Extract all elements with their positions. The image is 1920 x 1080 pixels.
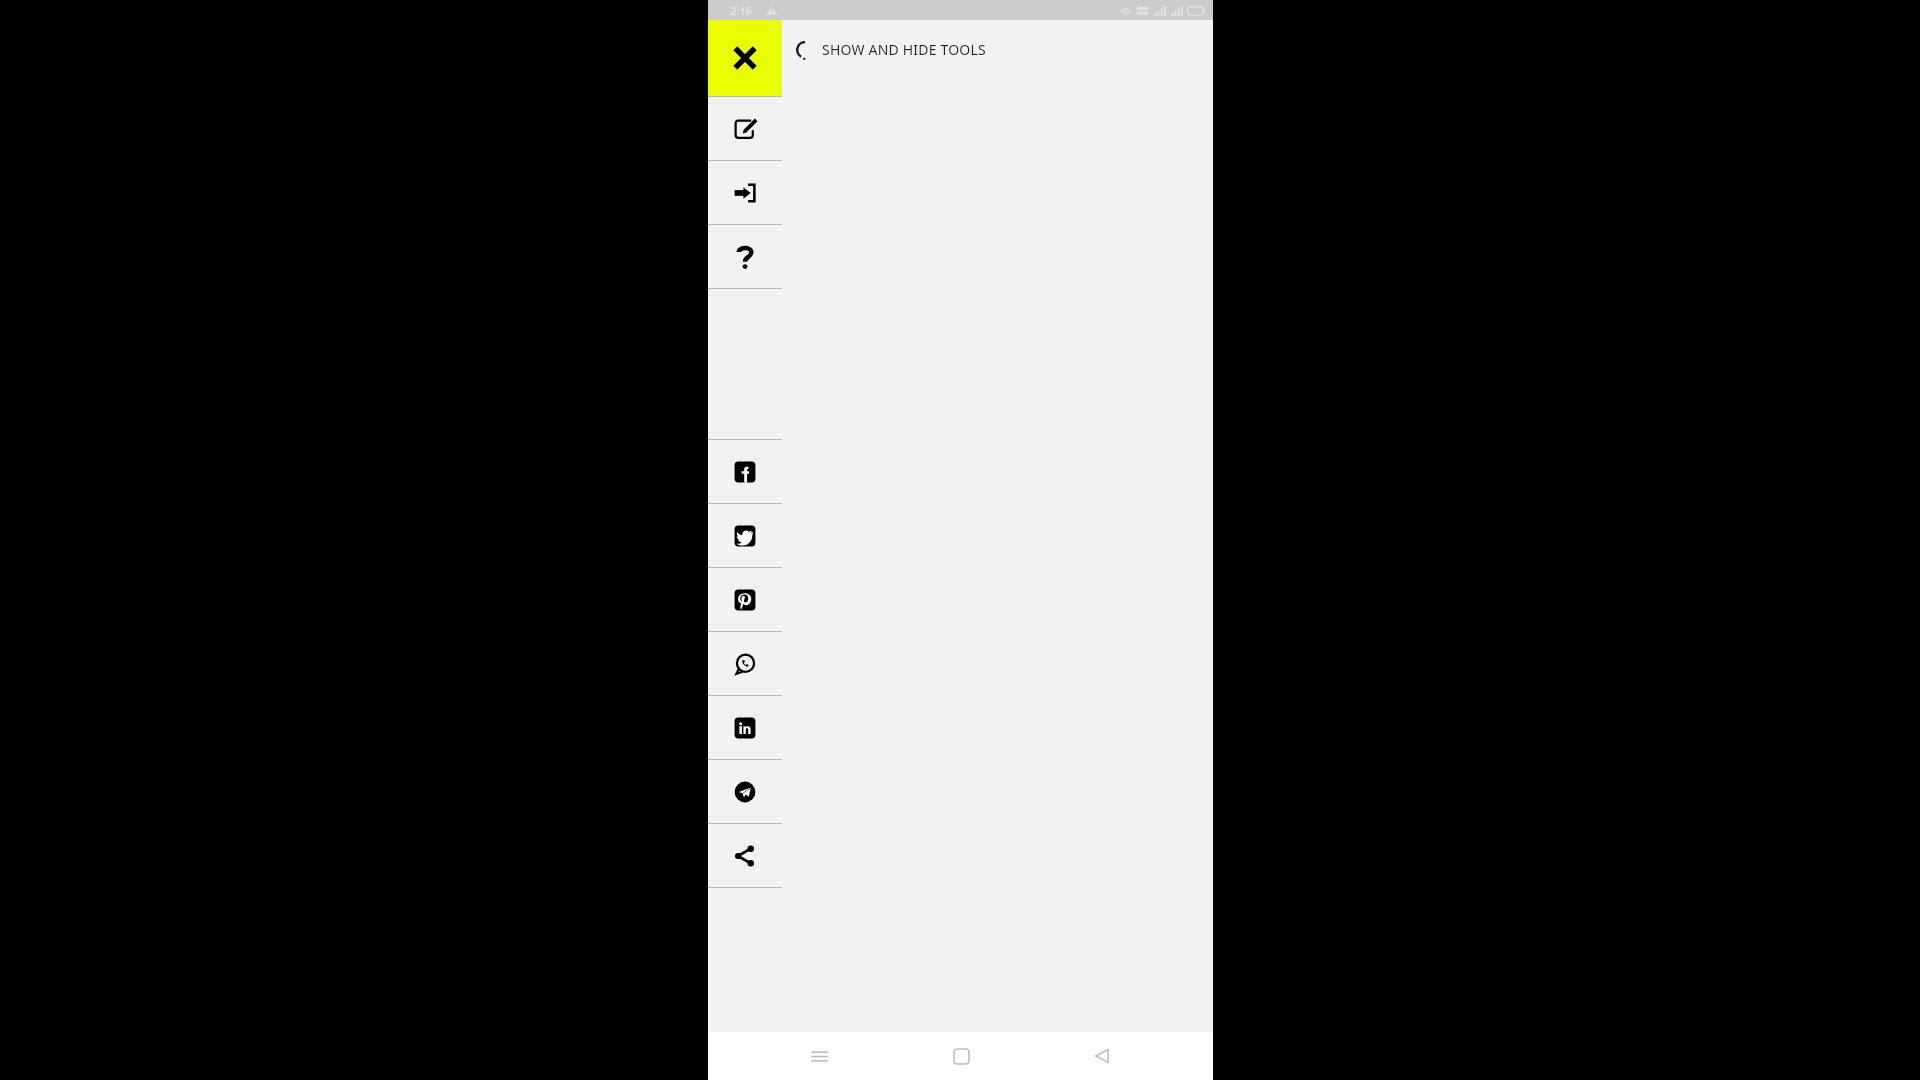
button[interactable]: Back — [1072, 1032, 1132, 1080]
button[interactable]: Facebook — [708, 440, 782, 503]
button[interactable]: LinkedIn — [708, 696, 782, 759]
button[interactable]: Close — [708, 20, 782, 96]
button[interactable]: Edit — [708, 97, 782, 160]
button[interactable]: Home — [931, 1032, 991, 1080]
button[interactable]: WhatsApp — [708, 632, 782, 695]
staticText: 2:16 — [730, 3, 752, 18]
button[interactable]: Log in — [708, 161, 782, 224]
staticText: SHOW AND HIDE TOOLS — [822, 40, 986, 59]
button[interactable]: Share — [708, 824, 782, 887]
button[interactable]: Telegram — [708, 760, 782, 823]
button[interactable]: Recent apps — [789, 1032, 849, 1080]
button[interactable]: Twitter — [708, 504, 782, 567]
button[interactable]: Help — [708, 225, 782, 288]
button[interactable]: Pinterest — [708, 568, 782, 631]
